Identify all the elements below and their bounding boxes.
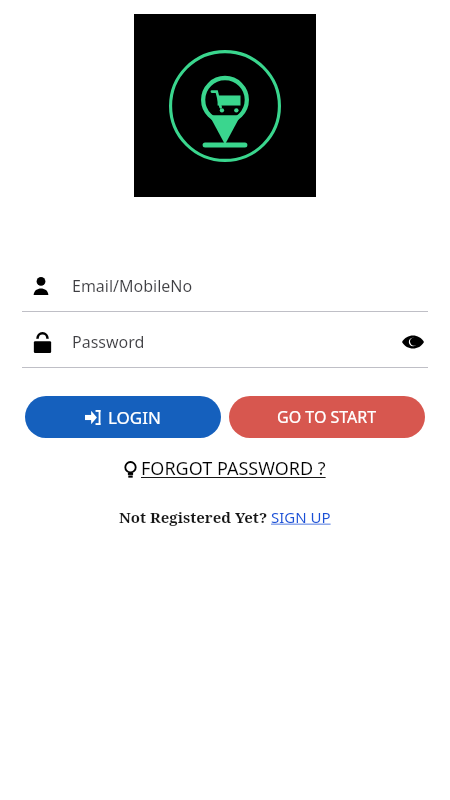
button[interactable]: Password — [0, 317, 450, 367]
staticText: GO TO START — [277, 406, 377, 428]
button[interactable]: Not Registered Yet? SIGN UP — [113, 505, 337, 529]
button[interactable]: Show password — [398, 327, 428, 357]
staticText: Not Registered Yet? SIGN UP — [119, 507, 331, 527]
staticText: Password — [72, 331, 145, 353]
staticText: FORGOT PASSWORD ? — [141, 456, 326, 481]
button[interactable]: Email/MobileNo — [0, 261, 450, 311]
button[interactable]: FORGOT PASSWORD ? — [118, 454, 332, 483]
staticText: LOGIN — [108, 406, 161, 429]
button[interactable]: LOGIN — [25, 396, 221, 438]
button[interactable]: GO TO START — [229, 396, 425, 438]
staticText: Email/MobileNo — [72, 275, 193, 297]
